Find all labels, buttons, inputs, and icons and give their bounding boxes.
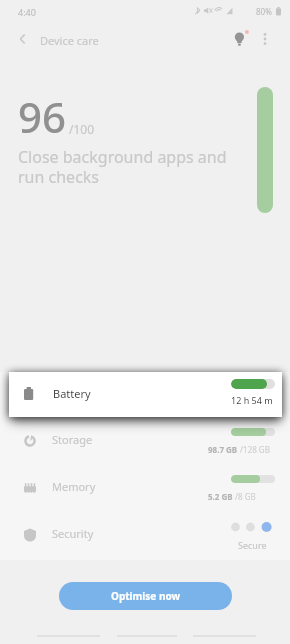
button[interactable]: Storage bbox=[0, 418, 290, 465]
staticText: 80% bbox=[256, 6, 272, 17]
staticText: Close background apps and run checks bbox=[18, 146, 227, 187]
staticText: /8 GB bbox=[233, 491, 256, 502]
staticText: Secure bbox=[238, 539, 267, 551]
staticText: 4:40 bbox=[18, 6, 36, 18]
staticText: /128 GB bbox=[238, 444, 270, 455]
button[interactable]: Battery bbox=[9, 372, 282, 417]
staticText: Device care bbox=[40, 33, 99, 48]
button[interactable]: Home bbox=[117, 628, 177, 644]
button[interactable]: More options bbox=[254, 28, 276, 50]
staticText: /100 bbox=[69, 121, 95, 137]
staticText: Memory bbox=[52, 479, 96, 494]
button[interactable]: Security bbox=[0, 512, 290, 559]
staticText: Storage bbox=[52, 432, 93, 447]
staticText: 98.7 GB bbox=[208, 444, 238, 455]
staticText: 96 bbox=[18, 88, 67, 145]
staticText: Optimise now bbox=[111, 589, 180, 603]
button[interactable]: Recents bbox=[37, 628, 100, 644]
staticText: Security bbox=[52, 526, 94, 541]
button[interactable]: Tips bbox=[228, 26, 252, 50]
staticText: Battery bbox=[53, 386, 91, 401]
button[interactable]: Back bbox=[193, 628, 256, 644]
staticText: 5.2 GB bbox=[208, 491, 233, 502]
staticText: 12 h 54 m bbox=[231, 394, 273, 406]
button[interactable]: Navigate up bbox=[12, 28, 34, 50]
button[interactable]: Memory bbox=[0, 465, 290, 512]
button[interactable]: Optimise now bbox=[59, 582, 232, 610]
